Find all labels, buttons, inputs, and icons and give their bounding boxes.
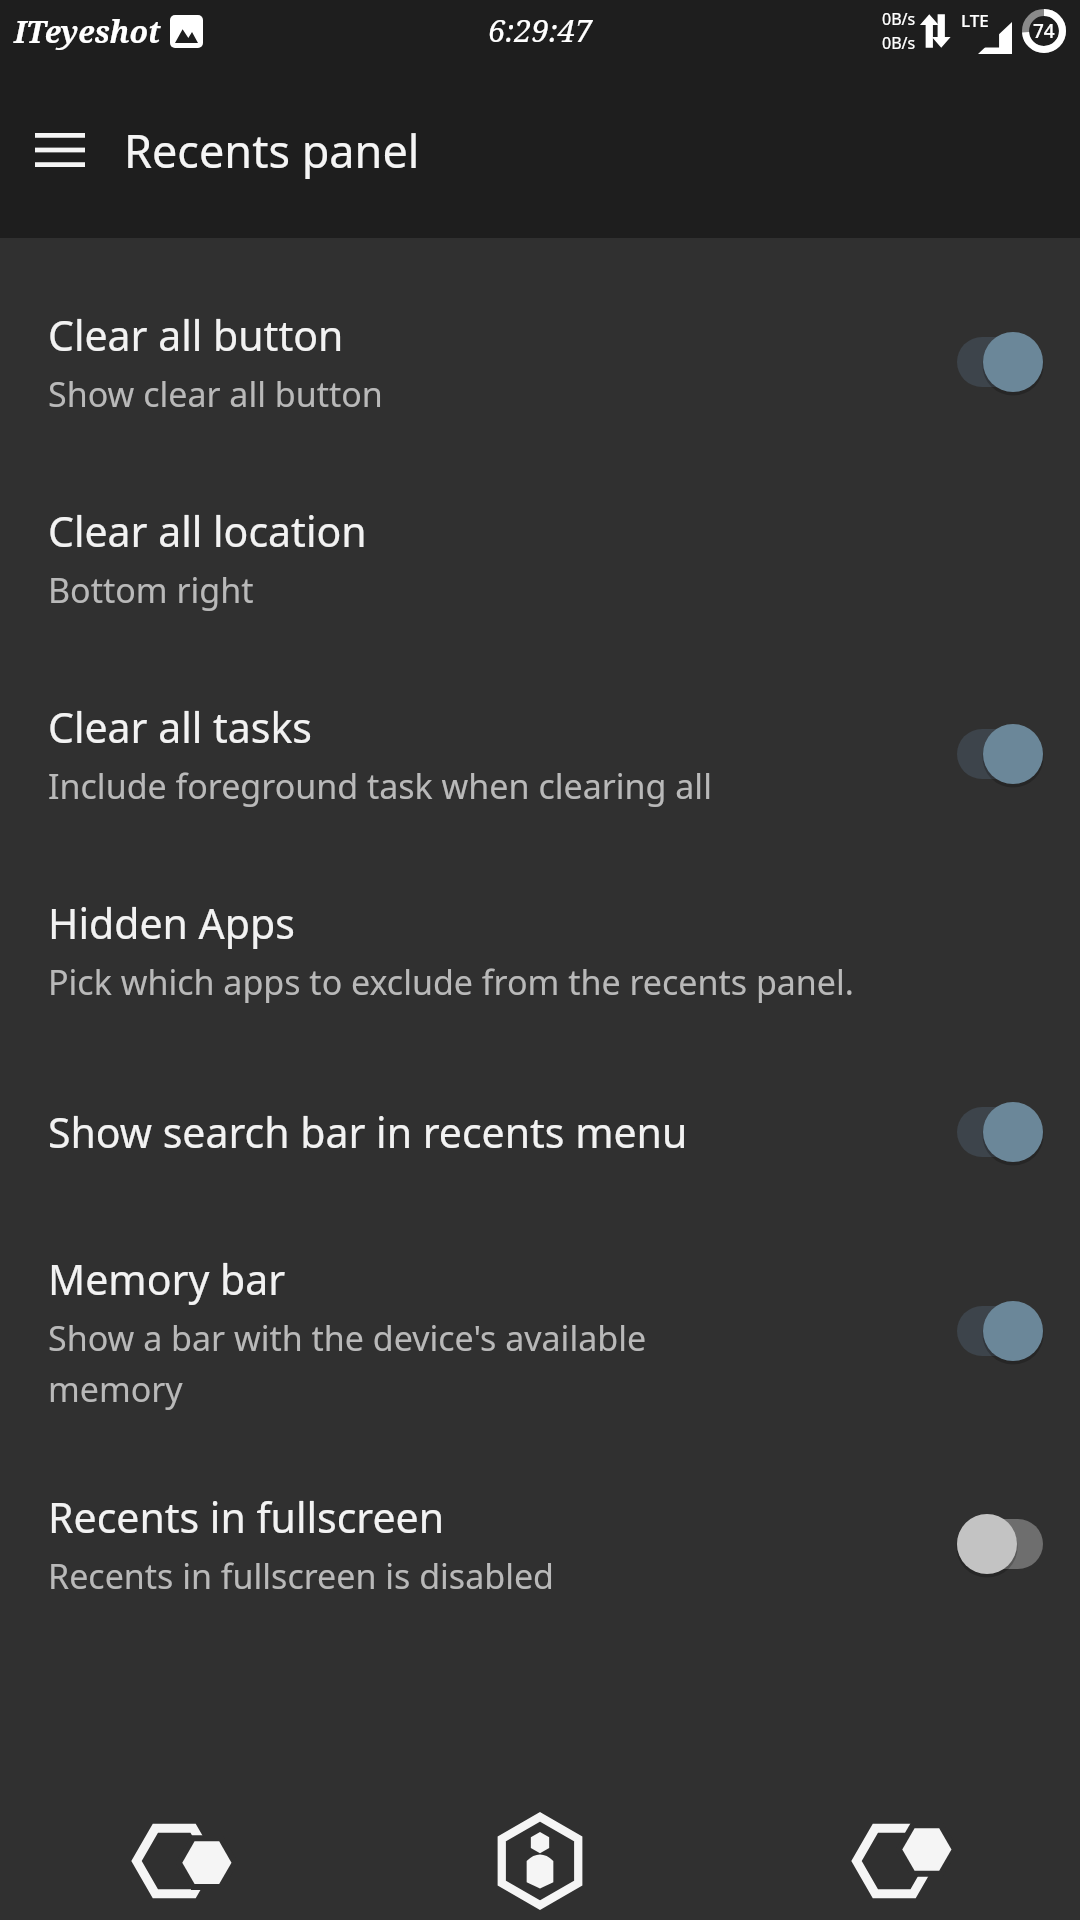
button[interactable]: Hidden Apps [0,852,1080,1048]
staticText: Clear all location [48,503,367,559]
button[interactable]: Show search bar in recents menu [0,1048,1080,1216]
staticText: 0B/s [882,32,916,54]
staticText: Show search bar in recents menu [48,1104,688,1160]
staticText: Bottom right [48,567,254,613]
staticText: Clear all tasks [48,699,312,755]
button[interactable]: Back [0,1802,360,1920]
button[interactable]: Recents in fullscreen [0,1446,1080,1642]
staticText: Clear all button [48,307,344,363]
staticText: 6:29:47 [488,9,593,51]
staticText: Recents panel [124,120,420,181]
button[interactable]: Home [360,1802,720,1920]
button[interactable]: Clear all location [0,460,1080,656]
button[interactable]: Memory bar [0,1216,1080,1446]
staticText: ITeyeshot [14,11,161,52]
staticText: LTE [961,9,989,32]
button[interactable]: Clear all tasks [0,656,1080,852]
button[interactable]: Recents [720,1802,1080,1920]
button[interactable]: Open navigation menu [22,112,98,188]
staticText: Pick which apps to exclude from the rece… [48,959,854,1005]
staticText: 0B/s [882,8,916,30]
staticText: 74 [1033,18,1055,44]
staticText: Include foreground task when clearing al… [48,763,712,809]
staticText: Hidden Apps [48,895,295,951]
staticText: Memory bar [48,1251,286,1307]
staticText: Show a bar with the device's available m… [48,1315,647,1412]
staticText: Recents in fullscreen [48,1489,445,1545]
button[interactable]: Clear all button [0,264,1080,460]
staticText: Show clear all button [48,371,383,417]
staticText: Recents in fullscreen is disabled [48,1553,554,1599]
